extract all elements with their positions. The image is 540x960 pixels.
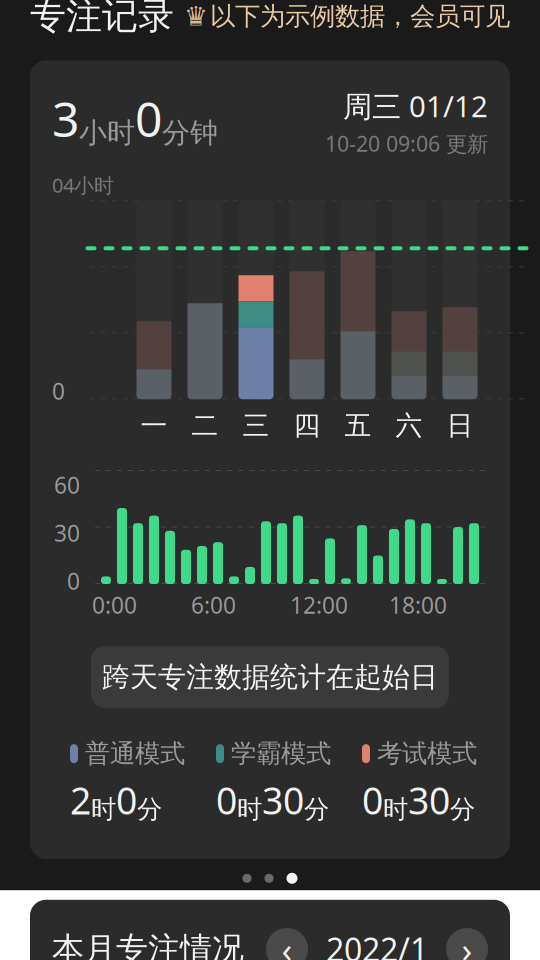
staticText: 18:00 [389, 590, 447, 620]
button[interactable]: 下一月 [446, 928, 488, 960]
staticText: 时 [91, 794, 116, 825]
staticText: 30 [54, 518, 80, 548]
staticText: 本月专注情况 [52, 929, 244, 960]
staticText: 学霸模式 [231, 738, 331, 769]
staticText: 10-20 09:06 更新 [325, 129, 488, 158]
staticText: 时 [237, 794, 262, 825]
staticText: 2 [70, 775, 91, 825]
staticText: › [461, 926, 472, 960]
staticText: 周三 01/12 [343, 86, 488, 125]
staticText: 分 [450, 794, 475, 825]
staticText: 以下为示例数据，会员可见 [210, 1, 510, 32]
button[interactable]: 跨天专注数据统计在起始日 [91, 646, 449, 708]
staticText: 12:00 [290, 590, 348, 620]
staticText: 一 [140, 409, 167, 442]
staticText: 日 [446, 409, 473, 442]
staticText: 专注记录 [30, 0, 174, 38]
staticText: 考试模式 [377, 738, 477, 769]
staticText: 五 [344, 409, 371, 442]
staticText: 2022/1 [326, 928, 428, 960]
staticText: 0 [216, 775, 237, 825]
staticText: 小时 [79, 116, 135, 150]
staticText: 30 [262, 775, 304, 825]
staticText: 60 [54, 470, 80, 500]
staticText: 六 [395, 409, 422, 442]
staticText: 分钟 [162, 116, 218, 150]
staticText: 分 [137, 794, 162, 825]
staticText: 分 [304, 794, 329, 825]
staticText: 0 [362, 775, 383, 825]
staticText: 6:00 [191, 590, 236, 620]
staticText: 0 [52, 376, 65, 406]
staticText: 普通模式 [85, 738, 185, 769]
staticText: 四 [293, 409, 320, 442]
staticText: 二 [191, 409, 218, 442]
staticText: 三 [242, 409, 269, 442]
staticText: 04小时 [52, 172, 114, 198]
staticText: 时 [383, 794, 408, 825]
button[interactable]: 上一月 [266, 928, 308, 960]
staticText: 30 [408, 775, 450, 825]
staticText: 0 [67, 566, 80, 596]
staticText: ‹ [281, 926, 292, 960]
staticText: ♛ [184, 1, 208, 31]
staticText: 0 [116, 775, 137, 825]
staticText: 0:00 [92, 590, 137, 620]
staticText: 跨天专注数据统计在起始日 [102, 660, 438, 694]
staticText: 3 [52, 86, 79, 150]
staticText: 0 [135, 86, 162, 150]
